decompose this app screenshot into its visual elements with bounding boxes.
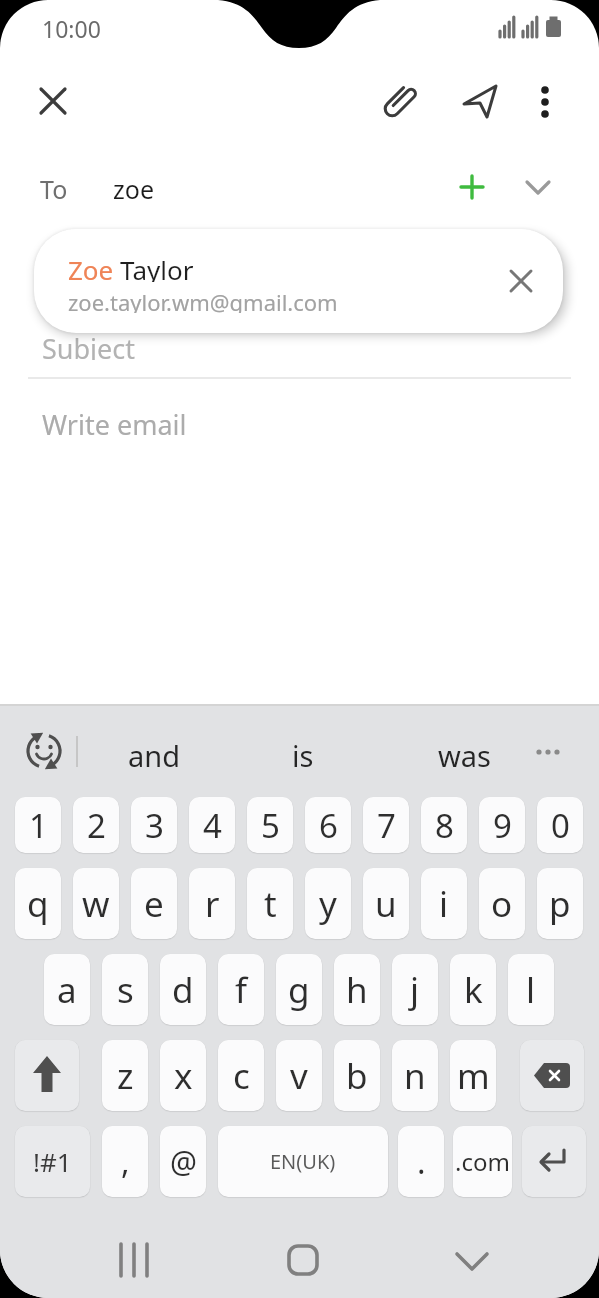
button[interactable]: m [450, 1040, 496, 1111]
button[interactable]: Zoe Taylor [34, 229, 563, 333]
button[interactable]: . [398, 1126, 444, 1197]
button[interactable] [522, 1126, 586, 1197]
button[interactable] [15, 1040, 79, 1111]
staticText: Zoe Taylor [68, 252, 194, 282]
staticText: 7 [377, 803, 396, 848]
button[interactable] [95, 1230, 175, 1290]
staticText: t [264, 880, 277, 928]
button[interactable] [432, 1230, 512, 1290]
button[interactable]: n [392, 1040, 438, 1111]
staticText: 2 [87, 803, 106, 848]
button[interactable]: z [102, 1040, 148, 1111]
staticText: c [233, 1052, 250, 1100]
button[interactable] [512, 162, 564, 212]
staticText: g [288, 966, 310, 1014]
button[interactable]: EN(UK) [218, 1126, 388, 1197]
staticText: n [404, 1052, 426, 1100]
button[interactable]: h [334, 954, 380, 1025]
staticText: e [144, 880, 164, 928]
button[interactable]: , [102, 1126, 148, 1197]
staticText: .com [455, 1145, 510, 1178]
button[interactable]: s [102, 954, 148, 1025]
staticText: 3 [145, 803, 164, 848]
staticText: q [27, 880, 49, 928]
staticText: o [491, 880, 513, 928]
button[interactable]: d [160, 954, 206, 1025]
button[interactable]: 1 [15, 797, 61, 853]
button[interactable]: t [247, 868, 293, 939]
button[interactable]: j [392, 954, 438, 1025]
button[interactable]: w [73, 868, 119, 939]
staticText: Write email [42, 406, 187, 436]
button[interactable]: is [253, 736, 353, 768]
button[interactable]: p [537, 868, 583, 939]
staticText: y [319, 880, 337, 928]
staticText: , [121, 1140, 130, 1184]
staticText: m [457, 1052, 490, 1100]
staticText: 8 [435, 803, 454, 848]
button[interactable]: .com [453, 1126, 512, 1197]
staticText: v [290, 1052, 308, 1100]
button[interactable] [446, 162, 498, 212]
staticText: z [117, 1052, 134, 1100]
staticText: w [82, 880, 110, 928]
staticText: 5 [261, 803, 280, 848]
button[interactable]: x [160, 1040, 206, 1111]
button[interactable]: r [189, 868, 235, 939]
button[interactable]: 6 [305, 797, 351, 853]
staticText: To [40, 172, 68, 202]
staticText: zoe [113, 172, 154, 202]
button[interactable] [454, 75, 506, 127]
button[interactable] [520, 1040, 584, 1111]
staticText: u [375, 880, 397, 928]
button[interactable]: and [104, 736, 204, 768]
button[interactable]: 7 [363, 797, 409, 853]
staticText: zoe.taylor.wm@gmail.com [68, 287, 338, 313]
button[interactable]: c [218, 1040, 264, 1111]
staticText: @ [170, 1141, 197, 1182]
staticText: s [117, 966, 134, 1014]
button[interactable]: u [363, 868, 409, 939]
button[interactable]: y [305, 868, 351, 939]
button[interactable]: l [508, 954, 554, 1025]
button[interactable]: k [450, 954, 496, 1025]
button[interactable]: 4 [189, 797, 235, 853]
button[interactable] [16, 723, 72, 779]
button[interactable]: was [414, 736, 514, 768]
staticText: i [439, 880, 449, 928]
button[interactable]: !#1 [15, 1126, 90, 1197]
button[interactable]: q [15, 868, 61, 939]
button[interactable]: i [421, 868, 467, 939]
button[interactable] [524, 731, 572, 773]
button[interactable] [519, 75, 571, 127]
button[interactable]: 8 [421, 797, 467, 853]
staticText: !#1 [33, 1144, 72, 1179]
staticText: x [174, 1052, 193, 1100]
button[interactable]: g [276, 954, 322, 1025]
staticText: Subject [42, 330, 136, 360]
button[interactable]: 3 [131, 797, 177, 853]
button[interactable]: e [131, 868, 177, 939]
button[interactable] [495, 255, 547, 307]
button[interactable]: b [334, 1040, 380, 1111]
button[interactable]: 2 [73, 797, 119, 853]
staticText: h [346, 966, 368, 1014]
staticText: l [526, 966, 536, 1014]
staticText: 6 [319, 803, 338, 848]
button[interactable]: 9 [479, 797, 525, 853]
button[interactable] [263, 1230, 343, 1290]
button[interactable]: f [218, 954, 264, 1025]
staticText: f [235, 966, 248, 1014]
button[interactable]: @ [160, 1126, 206, 1197]
button[interactable] [374, 75, 426, 127]
button[interactable]: o [479, 868, 525, 939]
staticText: p [549, 880, 571, 928]
button[interactable]: 0 [537, 797, 583, 853]
button[interactable]: a [44, 954, 90, 1025]
staticText: r [205, 880, 220, 928]
button[interactable]: 5 [247, 797, 293, 853]
button[interactable] [27, 75, 79, 127]
staticText: d [172, 966, 194, 1014]
button[interactable]: v [276, 1040, 322, 1111]
staticText: EN(UK) [270, 1148, 336, 1175]
